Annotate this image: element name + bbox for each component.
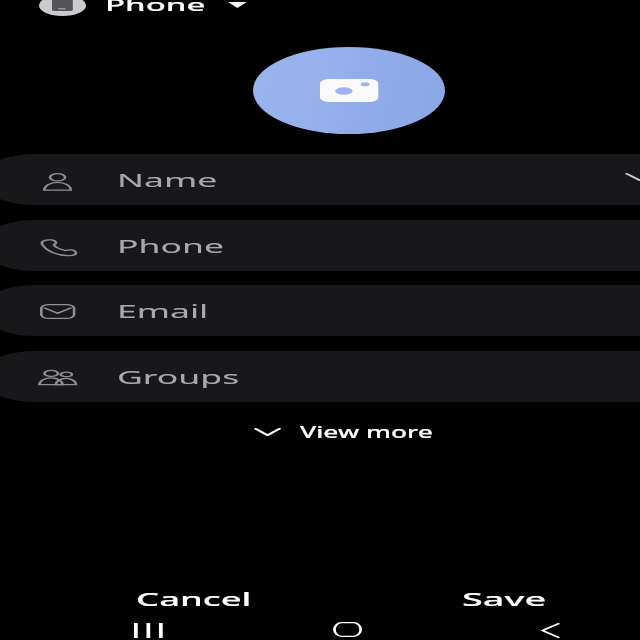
staticText: Phone xyxy=(105,0,206,16)
button[interactable]: Change contact photo xyxy=(253,47,445,134)
button[interactable]: Email xyxy=(0,285,640,336)
staticText: View more xyxy=(300,421,434,442)
staticText: Phone xyxy=(117,234,224,258)
button[interactable]: Name xyxy=(0,154,640,205)
staticText: Name xyxy=(117,168,218,192)
button[interactable]: Save xyxy=(400,576,610,618)
button[interactable]: Back xyxy=(500,612,600,640)
staticText: Email xyxy=(117,299,210,323)
staticText: Groups xyxy=(117,365,240,389)
button[interactable]: Cancel xyxy=(60,576,330,618)
button[interactable]: Home xyxy=(298,612,398,640)
button[interactable]: View more xyxy=(244,412,440,452)
staticText: Save xyxy=(462,587,548,611)
button[interactable]: Phone xyxy=(0,220,640,271)
staticText: Cancel xyxy=(136,587,252,611)
button[interactable]: Phone account xyxy=(32,0,254,30)
button[interactable]: Recents xyxy=(97,612,197,640)
button[interactable]: Groups xyxy=(0,351,640,402)
